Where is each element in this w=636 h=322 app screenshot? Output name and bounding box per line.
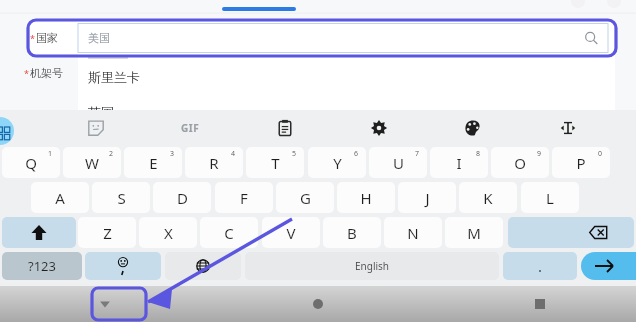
staticText: W	[85, 153, 99, 173]
staticText: U	[393, 153, 404, 173]
button[interactable]: B	[323, 217, 381, 248]
staticText: I	[456, 153, 462, 173]
button[interactable]: Backspace	[508, 217, 634, 248]
staticText: X	[164, 223, 173, 243]
button[interactable]: Hide keyboard	[98, 297, 112, 311]
button[interactable]: 美国	[78, 23, 608, 53]
button[interactable]: Enter	[581, 252, 636, 280]
button[interactable]: ?123	[2, 252, 82, 280]
button[interactable]: Keyboard tool	[85, 117, 107, 139]
staticText: V	[286, 223, 296, 243]
button[interactable]: Q	[2, 147, 60, 178]
button[interactable]: Keyboard tool	[462, 117, 484, 139]
staticText: 8	[476, 149, 481, 159]
button[interactable]: T	[246, 147, 304, 178]
button[interactable]: *	[30, 31, 78, 45]
staticText: P	[576, 153, 586, 173]
staticText: 美国	[88, 31, 110, 45]
staticText: M	[467, 223, 481, 243]
button[interactable]: G	[276, 182, 334, 213]
button[interactable]: S	[92, 182, 150, 213]
button[interactable]: *	[30, 22, 614, 54]
staticText: 5	[292, 149, 297, 159]
button[interactable]: M	[445, 217, 503, 248]
button[interactable]: X	[139, 217, 197, 248]
button[interactable]: Search	[584, 31, 598, 45]
staticText: T	[271, 153, 280, 173]
button[interactable]: Emoji	[85, 252, 161, 280]
button[interactable]: E	[124, 147, 182, 178]
button[interactable]: Shift	[2, 217, 76, 248]
staticText: *	[24, 67, 29, 79]
staticText: 9	[537, 149, 542, 159]
button[interactable]: English	[245, 252, 499, 280]
staticText: 4	[231, 149, 236, 159]
staticText: English	[355, 259, 390, 273]
button[interactable]: O	[491, 147, 549, 178]
staticText: 2	[109, 149, 114, 159]
staticText: 1	[48, 149, 53, 159]
button[interactable]: Keyboard tool	[557, 117, 579, 139]
staticText: G	[300, 188, 311, 208]
button[interactable]: F	[215, 182, 273, 213]
button[interactable]: H	[337, 182, 395, 213]
button[interactable]: Z	[78, 217, 136, 248]
button[interactable]: A	[31, 182, 89, 213]
button[interactable]: I	[430, 147, 488, 178]
staticText: L	[546, 188, 554, 208]
button[interactable]: 斯里兰卡	[88, 69, 140, 85]
staticText: ?123	[28, 257, 56, 275]
staticText: A	[55, 188, 65, 208]
staticText: N	[407, 223, 419, 243]
staticText: B	[347, 223, 357, 243]
button[interactable]: J	[398, 182, 456, 213]
button[interactable]: L	[521, 182, 579, 213]
button[interactable]: N	[384, 217, 442, 248]
staticText: O	[514, 153, 526, 173]
button[interactable]: Y	[308, 147, 366, 178]
staticText: J	[425, 188, 430, 208]
button[interactable]: Keyboard tool	[274, 117, 296, 139]
staticText: H	[360, 188, 372, 208]
staticText: Z	[103, 223, 112, 243]
staticText: K	[483, 188, 493, 208]
button[interactable]: K	[459, 182, 517, 213]
staticText: .	[538, 256, 543, 276]
button[interactable]: *	[24, 66, 82, 80]
staticText: GIF	[181, 121, 200, 135]
staticText: 3	[170, 149, 175, 159]
staticText: E	[149, 153, 158, 173]
button[interactable]: Keyboard switcher	[0, 117, 14, 145]
staticText: Q	[25, 153, 37, 173]
button[interactable]: Home	[313, 299, 323, 309]
staticText: F	[240, 188, 248, 208]
button[interactable]: W	[63, 147, 121, 178]
button[interactable]: D	[153, 182, 211, 213]
staticText: D	[177, 188, 188, 208]
button[interactable]: Keyboard tool	[368, 117, 390, 139]
button[interactable]: Change language	[165, 252, 241, 280]
button[interactable]: .	[503, 252, 577, 280]
staticText: 7	[415, 149, 420, 159]
button[interactable]: R	[185, 147, 243, 178]
staticText: 6	[354, 149, 359, 159]
staticText: *	[30, 32, 35, 44]
staticText: 机架号	[30, 66, 63, 80]
button[interactable]: GIF	[176, 121, 204, 135]
staticText: Y	[333, 153, 342, 173]
button[interactable]	[222, 7, 296, 11]
button[interactable]: 英国	[88, 104, 114, 120]
staticText: 英国	[88, 104, 114, 120]
button[interactable]: P	[552, 147, 610, 178]
staticText: R	[209, 153, 219, 173]
staticText: 0	[598, 149, 603, 159]
staticText: 国家	[36, 31, 58, 45]
button[interactable]: C	[200, 217, 258, 248]
button[interactable]: U	[369, 147, 427, 178]
button[interactable]: V	[262, 217, 320, 248]
staticText: S	[117, 188, 126, 208]
staticText: C	[224, 223, 234, 243]
